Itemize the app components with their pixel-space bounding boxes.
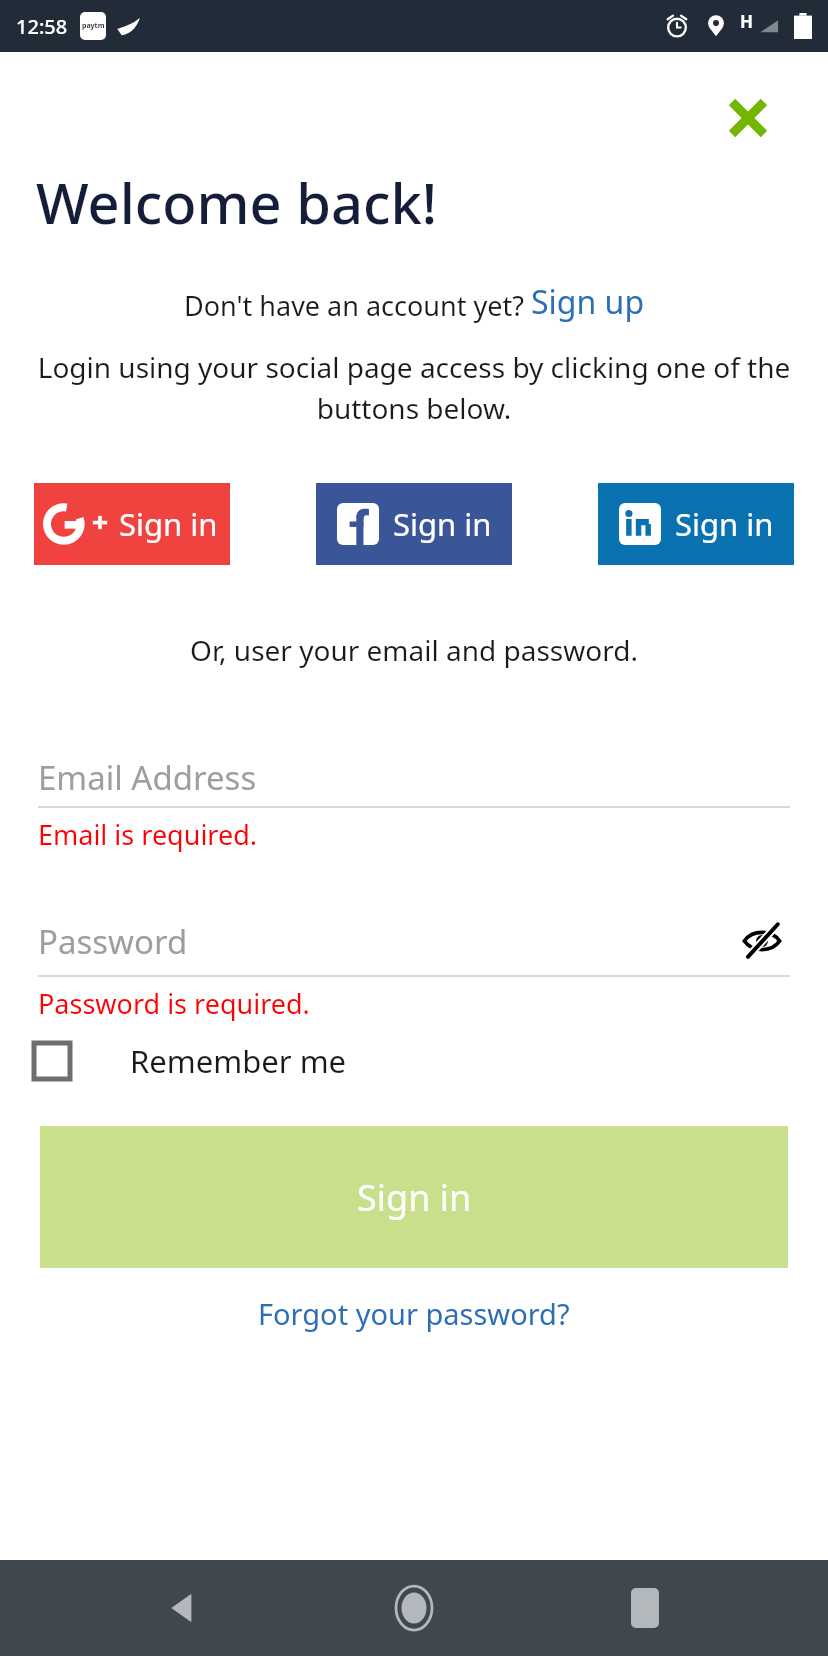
button[interactable]: Close — [720, 90, 776, 146]
staticText: Sign up — [531, 280, 645, 324]
button[interactable]: Home — [366, 1560, 462, 1656]
button[interactable]: Back — [135, 1560, 231, 1656]
staticText: Password is required. — [38, 985, 310, 1022]
staticText: 12:58 — [16, 13, 68, 40]
staticText: Sign in — [393, 503, 492, 545]
staticText: Password — [38, 919, 734, 964]
staticText: Login using your social page access by c… — [14, 348, 814, 427]
button[interactable]: Don't have an account yet? — [0, 280, 828, 324]
staticText: Sign in — [119, 503, 218, 545]
staticText: Don't have an account yet? — [184, 287, 531, 324]
button[interactable]: Sign in — [40, 1126, 788, 1268]
staticText: H — [740, 10, 754, 33]
button[interactable]: Toggle password visibility — [734, 913, 790, 969]
button[interactable]: Sign in — [598, 483, 794, 565]
button[interactable]: Sign in — [316, 483, 512, 565]
staticText: Sign in — [675, 503, 774, 545]
button[interactable]: Remember me — [0, 1032, 371, 1090]
staticText: Sign in — [357, 1173, 472, 1222]
staticText: Remember me — [130, 1040, 347, 1082]
button[interactable]: Forgot your password? — [246, 1290, 582, 1337]
staticText: Or, user your email and password. — [0, 631, 828, 669]
staticText: Email is required. — [38, 816, 258, 853]
staticText: Email Address — [38, 755, 790, 800]
button[interactable]: Recent apps — [597, 1560, 693, 1656]
button[interactable]: Sign in — [34, 483, 230, 565]
staticText: paytm — [82, 21, 105, 31]
staticText: Welcome back! — [36, 164, 438, 240]
